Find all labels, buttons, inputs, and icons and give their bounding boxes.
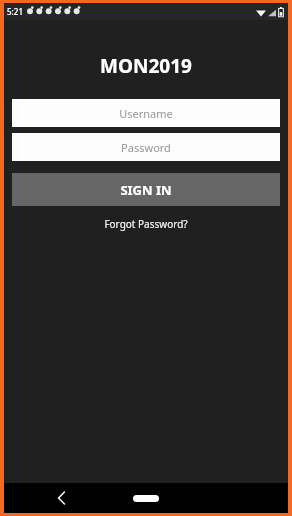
staticText: Password [121,140,171,155]
staticText: 5:21 [7,6,23,17]
button[interactable]: Password [12,133,280,161]
staticText: Forgot Password? [104,217,188,231]
button[interactable]: SIGN IN [12,173,280,206]
staticText: SIGN IN [120,181,172,199]
button[interactable]: Back [48,485,74,511]
staticText: MON2019 [100,53,192,79]
button[interactable]: Username [12,99,280,127]
staticText: Username [119,106,173,121]
button[interactable]: Home [126,487,166,509]
button[interactable]: Forgot Password? [104,217,188,231]
